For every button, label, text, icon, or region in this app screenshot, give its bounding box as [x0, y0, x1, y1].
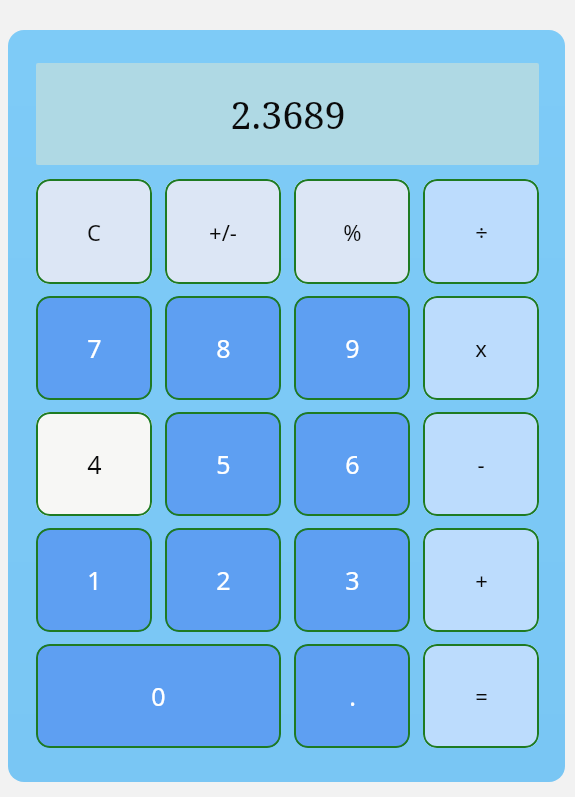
staticText: 3: [345, 563, 360, 597]
staticText: 6: [345, 447, 360, 481]
button[interactable]: 3: [294, 528, 410, 632]
staticText: 9: [345, 331, 360, 365]
staticText: 2.3689: [230, 88, 346, 140]
button[interactable]: +: [423, 528, 539, 632]
button[interactable]: -: [423, 412, 539, 516]
staticText: 4: [87, 447, 102, 481]
button[interactable]: x: [423, 296, 539, 400]
staticText: 0: [151, 679, 166, 713]
button[interactable]: 6: [294, 412, 410, 516]
staticText: +/-: [209, 217, 237, 247]
button[interactable]: 1: [36, 528, 152, 632]
button[interactable]: 8: [165, 296, 281, 400]
button[interactable]: 2: [165, 528, 281, 632]
button[interactable]: %: [294, 179, 410, 284]
staticText: %: [343, 217, 362, 247]
staticText: -: [477, 449, 485, 479]
button[interactable]: ÷: [423, 179, 539, 284]
button[interactable]: 7: [36, 296, 152, 400]
staticText: 8: [216, 331, 231, 365]
button[interactable]: =: [423, 644, 539, 748]
button[interactable]: 9: [294, 296, 410, 400]
button[interactable]: C: [36, 179, 152, 284]
staticText: 5: [216, 447, 231, 481]
button[interactable]: .: [294, 644, 410, 748]
button[interactable]: 4: [36, 412, 152, 516]
staticText: 7: [87, 331, 102, 365]
staticText: C: [87, 217, 101, 247]
staticText: x: [475, 333, 487, 363]
button[interactable]: +/-: [165, 179, 281, 284]
button[interactable]: 5: [165, 412, 281, 516]
button[interactable]: 0: [36, 644, 281, 748]
staticText: =: [475, 681, 488, 711]
staticText: 2: [216, 563, 231, 597]
staticText: 1: [87, 563, 102, 597]
staticText: .: [349, 679, 356, 713]
staticText: ÷: [475, 217, 488, 247]
staticText: +: [475, 565, 488, 595]
